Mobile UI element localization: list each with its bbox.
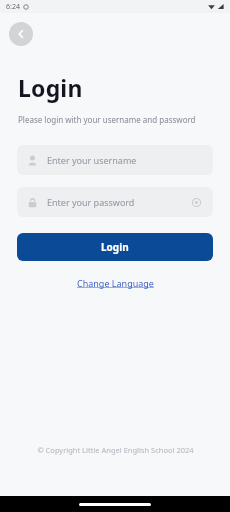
- staticText: Change Language: [77, 277, 154, 289]
- staticText: 6:24: [6, 2, 20, 12]
- staticText: Login: [18, 72, 83, 103]
- button[interactable]: Login: [17, 233, 213, 261]
- staticText: Enter your password: [47, 196, 189, 208]
- button[interactable]: Enter your password: [17, 187, 213, 217]
- staticText: Login: [101, 240, 129, 254]
- staticText: Enter your username: [47, 154, 203, 166]
- button[interactable]: Change Language: [71, 275, 160, 291]
- button[interactable]: Back: [9, 22, 33, 46]
- button[interactable]: Show password: [189, 195, 203, 209]
- button[interactable]: Enter your username: [17, 145, 213, 175]
- staticText: © Copyright Little Angel English School …: [37, 445, 194, 455]
- staticText: Please login with your username and pass…: [18, 114, 196, 125]
